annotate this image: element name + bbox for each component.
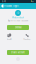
staticText: 9:41: [2, 0, 6, 3]
staticText: ıll ≡: [31, 0, 34, 3]
staticText: Continue: [14, 26, 21, 29]
staticText: ID: [16, 12, 19, 14]
button[interactable]: Create account: [7, 50, 29, 55]
staticText: Welcome back: [12, 16, 24, 19]
button[interactable]: Continue: [7, 25, 29, 30]
staticText: Account login: [4, 4, 18, 7]
button[interactable]: Passkey: [18, 32, 36, 42]
staticText: Create account: [11, 51, 25, 54]
staticText: Passkey: [23, 39, 30, 40]
staticText: Scan ID: [6, 39, 11, 40]
button[interactable]: Scan ID: [0, 32, 18, 42]
button[interactable]: Back: [1, 4, 4, 8]
staticText: Sign in to your account: [7, 19, 28, 22]
